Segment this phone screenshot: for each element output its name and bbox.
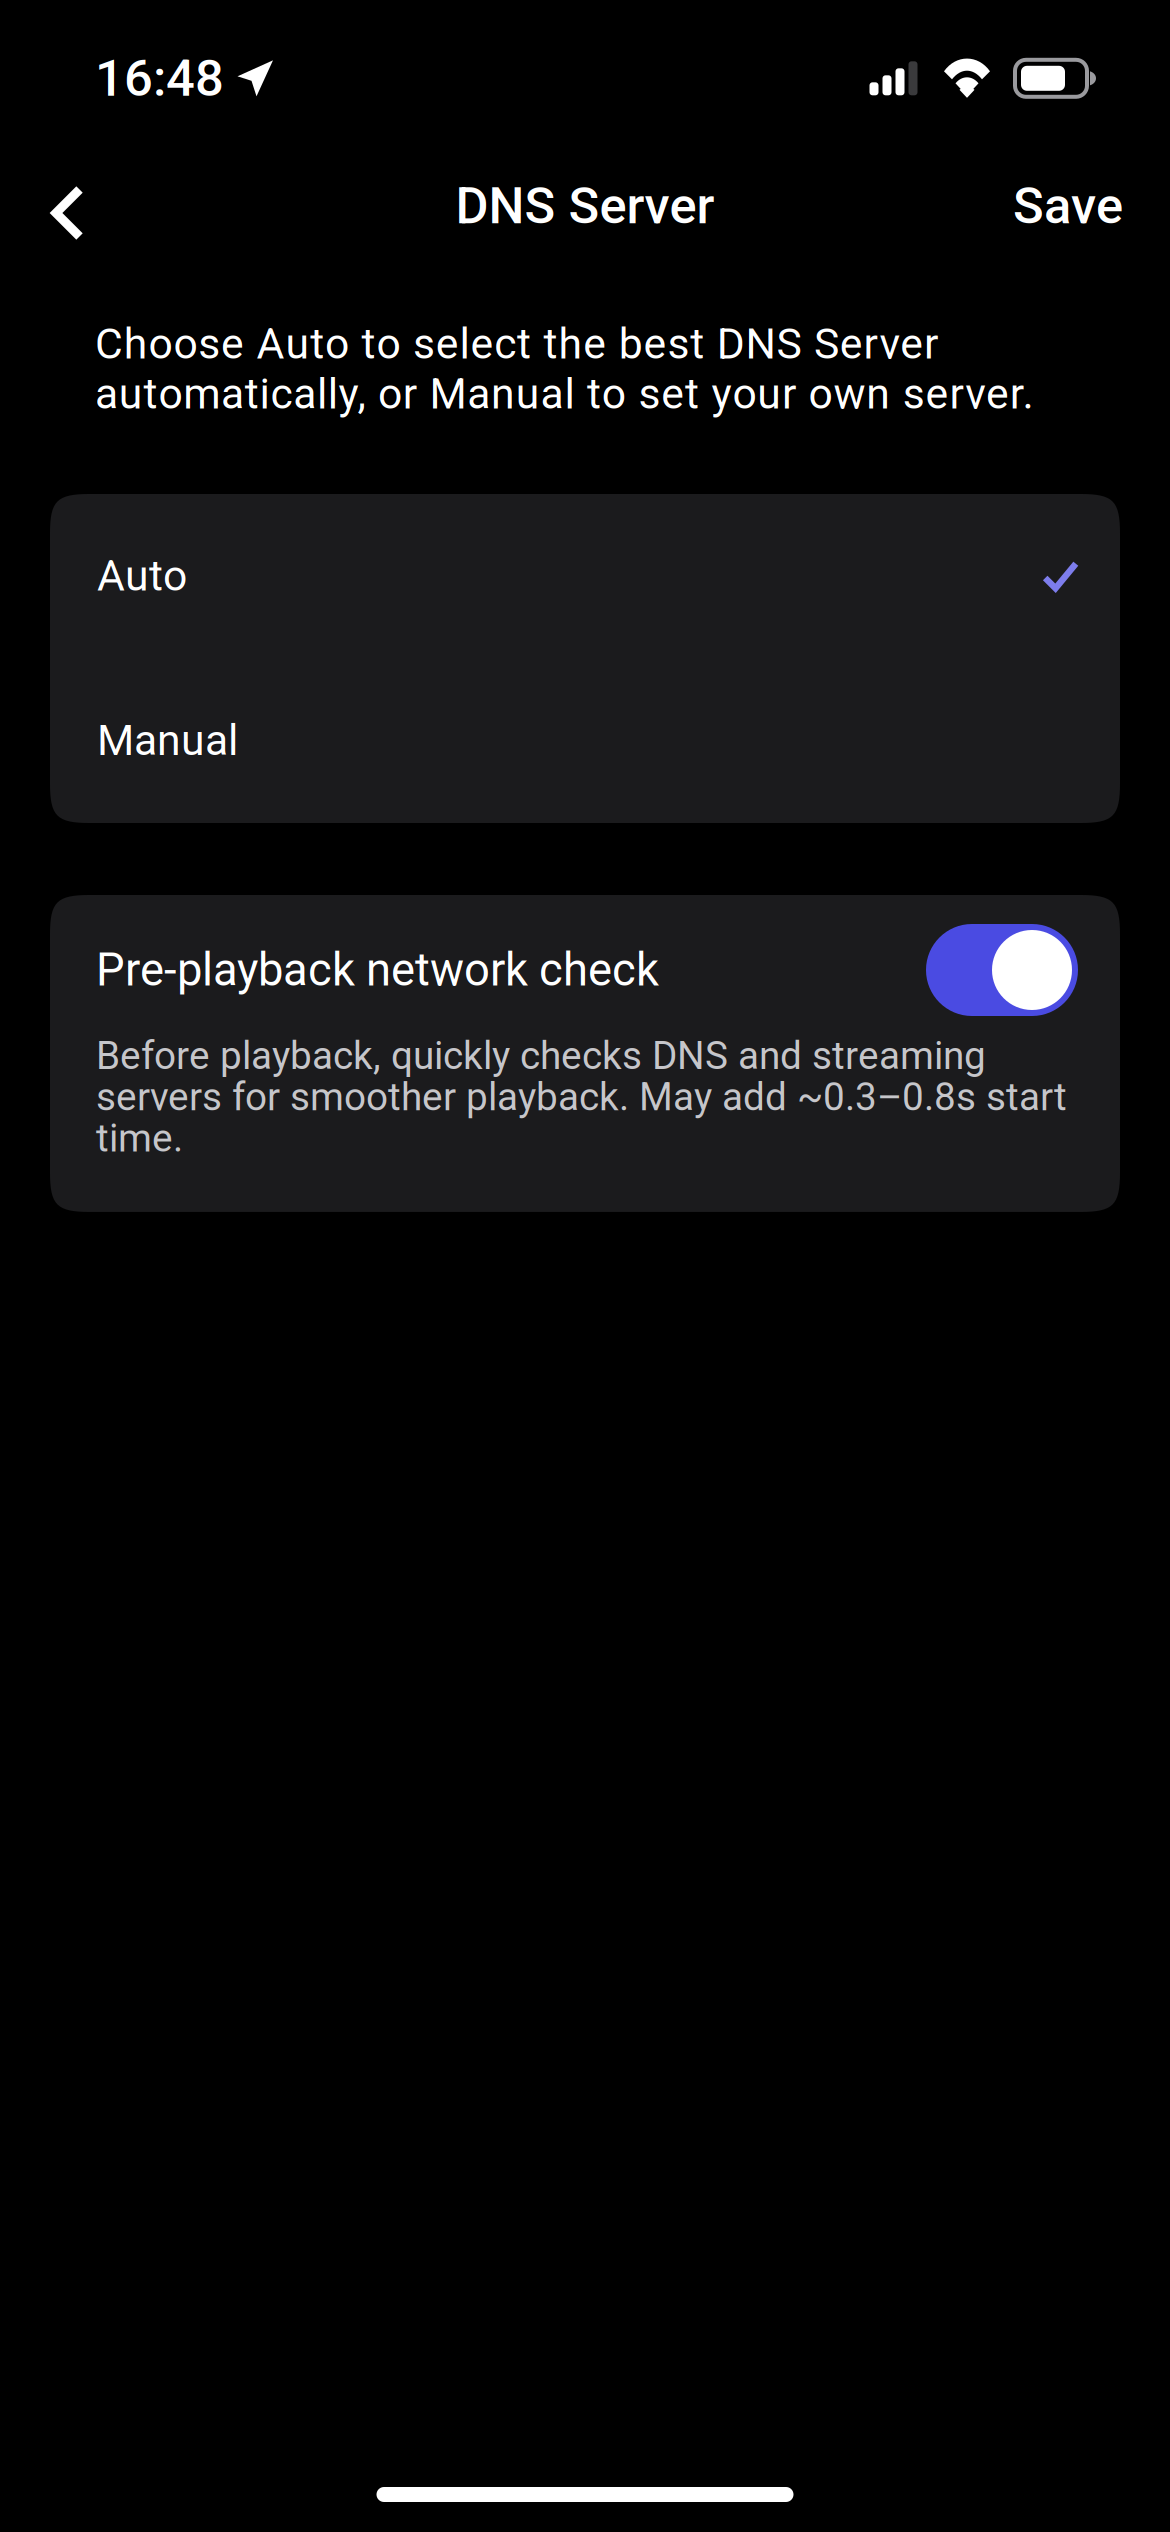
- button[interactable]: Back: [17, 146, 119, 266]
- staticText: Pre-playback network check: [96, 943, 659, 996]
- staticText: Save: [1013, 176, 1123, 236]
- staticText: Before playback, quickly checks DNS and …: [96, 1033, 1067, 1161]
- button[interactable]: Save: [988, 146, 1148, 266]
- staticText: Choose Auto to select the best DNS Serve…: [95, 319, 1034, 419]
- staticText: DNS Server: [455, 176, 714, 236]
- button[interactable]: Auto: [50, 494, 1120, 658]
- staticText: Manual: [97, 715, 238, 765]
- staticText: Auto: [97, 551, 187, 601]
- staticText: 16:48: [95, 49, 224, 108]
- button[interactable]: Pre-playback network check: [50, 895, 1120, 1033]
- button[interactable]: Manual: [50, 658, 1120, 823]
